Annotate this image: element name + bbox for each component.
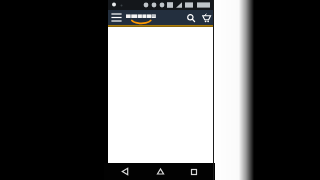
button[interactable]: Recent apps [181, 163, 207, 180]
button[interactable]: Search [183, 10, 198, 25]
button[interactable]: Shopping cart [198, 10, 214, 25]
button[interactable]: Home [147, 163, 173, 180]
button[interactable]: Amazon home [124, 10, 158, 25]
button[interactable]: Open navigation menu [108, 10, 124, 25]
button[interactable]: Back [112, 163, 138, 180]
